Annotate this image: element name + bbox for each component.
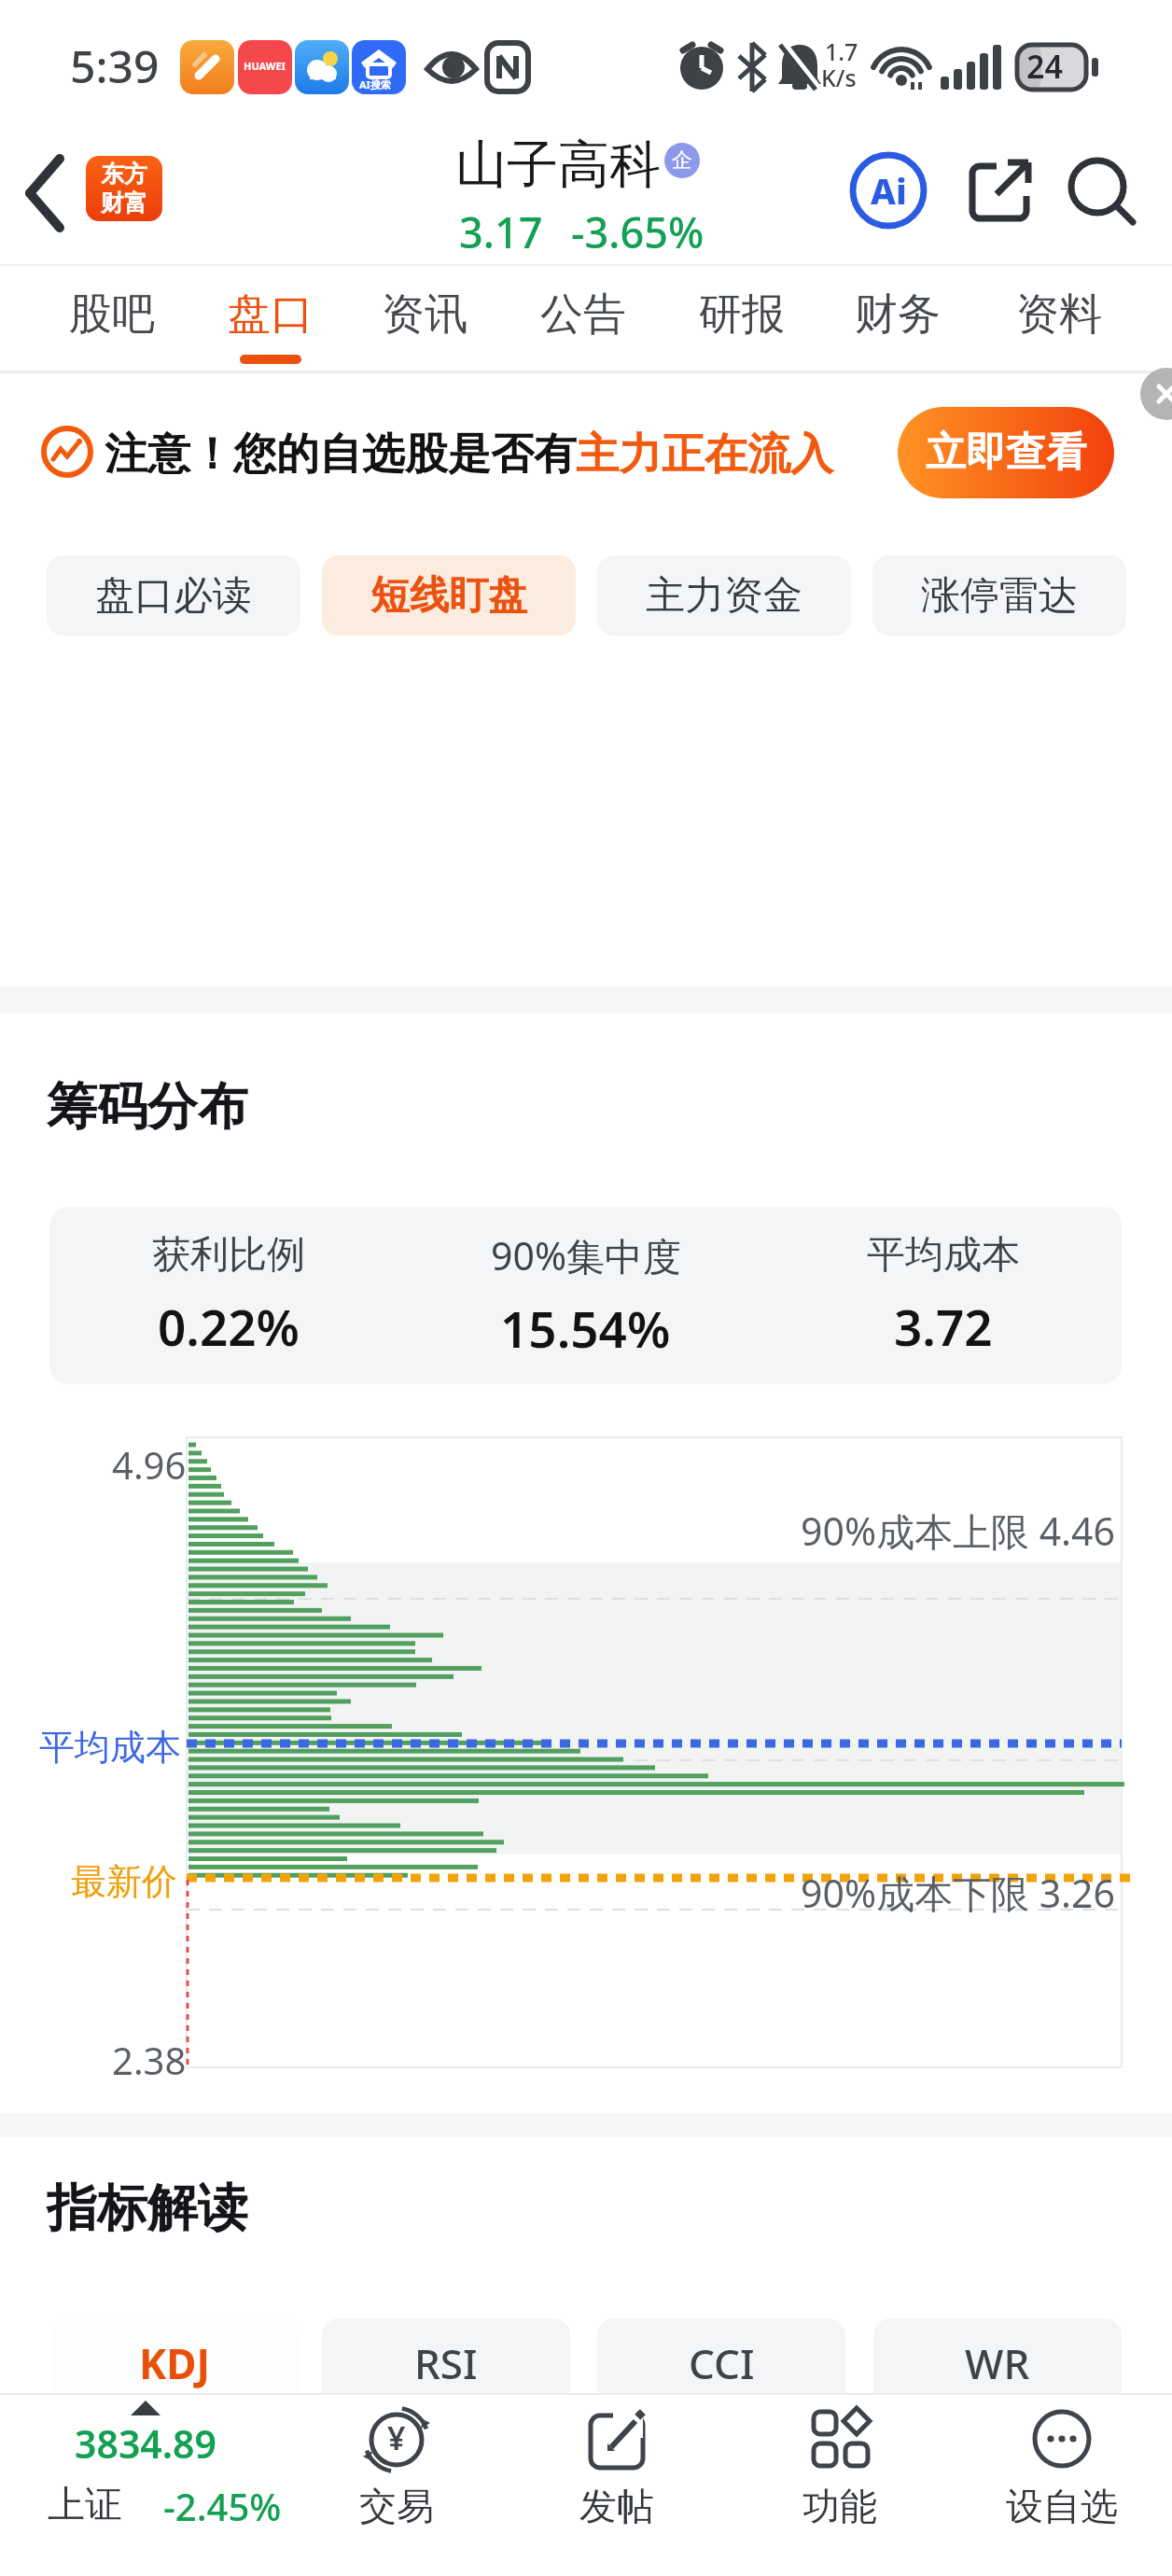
button[interactable]: 3834.89 (9, 2402, 299, 2561)
staticText: 研报 (699, 287, 785, 342)
staticText: AI搜索 (359, 77, 391, 91)
staticText: 平均成本 (39, 1725, 181, 1770)
staticText: 3834.89 (75, 2417, 217, 2470)
button[interactable]: CCI (597, 2318, 845, 2408)
staticText: 15.54% (500, 1295, 671, 1362)
staticText: 涨停雷达 (921, 571, 1078, 621)
button[interactable]: 东方 (86, 156, 162, 221)
button[interactable]: 发帖 (542, 2402, 691, 2570)
staticText: ¥ (387, 2416, 406, 2459)
staticText: K/s (821, 62, 857, 93)
staticText: HUAWEI (244, 59, 286, 73)
staticText: 上证 (48, 2481, 122, 2527)
staticText: 功能 (802, 2483, 877, 2529)
button[interactable]: RSI (322, 2318, 570, 2408)
button[interactable]: 立即查看 (898, 407, 1114, 498)
staticText: 资料 (1016, 287, 1102, 342)
staticText: 财富 (101, 189, 147, 217)
button[interactable]: 盘口 (187, 275, 355, 354)
button[interactable]: 股吧 (28, 275, 196, 354)
staticText: -3.65% (571, 203, 705, 260)
staticText: 指标解读 (47, 2177, 248, 2240)
button[interactable]: 财务 (814, 275, 982, 354)
staticText: 注意！您的自选股是否有 (105, 427, 577, 482)
staticText: 盘口 (228, 287, 314, 342)
staticText: 短线盯盘 (370, 571, 527, 621)
staticText: 东方 (101, 160, 147, 189)
staticText: 设自选 (1006, 2483, 1118, 2529)
staticText: 发帖 (579, 2483, 654, 2529)
staticText: KDJ (139, 2335, 210, 2391)
staticText: 盘口必读 (95, 571, 252, 621)
staticText: 获利比例 (152, 1231, 305, 1280)
staticText: 4.96 (112, 1439, 187, 1490)
button[interactable]: 主力资金 (597, 555, 851, 636)
button[interactable]: 资料 (975, 275, 1143, 354)
staticText: 筹码分布 (47, 1075, 248, 1139)
button[interactable]: 短线盯盘 (322, 555, 576, 636)
button[interactable]: 设自选 (987, 2402, 1137, 2570)
staticText: 资讯 (382, 287, 467, 342)
button[interactable]: Ai (849, 151, 928, 230)
staticText: 24 (1026, 45, 1063, 88)
button[interactable]: 功能 (765, 2402, 914, 2570)
staticText: -2.45% (163, 2481, 282, 2531)
staticText: 1.7 (825, 35, 858, 67)
button[interactable] (13, 140, 84, 243)
staticText: 财务 (855, 287, 941, 342)
button[interactable]: 涨停雷达 (872, 555, 1126, 636)
button[interactable]: 研报 (658, 275, 826, 354)
staticText: 90%成本下限 3.26 (691, 1867, 1115, 1919)
staticText: 公告 (540, 287, 626, 342)
button[interactable]: 盘口必读 (47, 555, 300, 636)
staticText: 立即查看 (926, 427, 1086, 478)
staticText: 90%集中度 (491, 1229, 681, 1281)
button[interactable]: 注意！您的自选股是否有 (0, 373, 1172, 532)
button[interactable] (961, 151, 1039, 230)
staticText: 交易 (359, 2483, 434, 2529)
button[interactable]: 公告 (499, 275, 667, 354)
button[interactable]: 资讯 (341, 275, 509, 354)
staticText: 90%成本上限 4.46 (691, 1505, 1115, 1557)
staticText: 主力正在流入 (576, 427, 833, 482)
staticText: WR (965, 2335, 1030, 2391)
button[interactable] (1060, 151, 1144, 235)
button[interactable]: WR (873, 2318, 1122, 2408)
staticText: 平均成本 (867, 1231, 1020, 1280)
staticText: RSI (414, 2335, 478, 2391)
staticText: 山子高科 (455, 133, 661, 197)
staticText: 3.72 (894, 1293, 993, 1360)
staticText: 主力资金 (646, 571, 802, 621)
staticText: 5:39 (70, 35, 160, 96)
staticText: 最新价 (71, 1859, 177, 1904)
staticText: 2.38 (112, 2035, 187, 2085)
staticText: 企 (672, 147, 692, 174)
staticText: Ai (871, 166, 907, 215)
staticText: CCI (689, 2335, 755, 2391)
staticText: 股吧 (69, 287, 155, 342)
button[interactable]: ¥ (322, 2402, 471, 2570)
staticText: 3.17 (459, 203, 543, 260)
button[interactable] (1137, 373, 1172, 426)
staticText: 0.22% (158, 1293, 300, 1360)
button[interactable]: KDJ (50, 2318, 299, 2408)
